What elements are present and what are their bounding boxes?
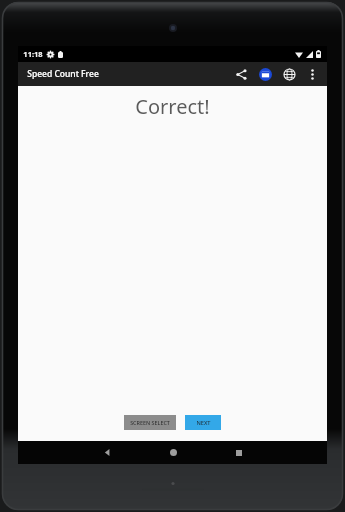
button[interactable]: Home bbox=[149, 441, 197, 464]
staticText: SCREEN SELECT bbox=[130, 419, 170, 426]
button[interactable]: NEXT bbox=[185, 415, 221, 430]
button[interactable]: More options bbox=[301, 63, 323, 85]
staticText: Speed Count Free bbox=[27, 68, 99, 80]
button[interactable]: Share bbox=[229, 62, 253, 86]
staticText: NEXT bbox=[196, 419, 211, 427]
button[interactable]: Recent apps bbox=[215, 441, 263, 464]
button[interactable]: Language bbox=[277, 62, 301, 86]
button[interactable]: SCREEN SELECT bbox=[124, 415, 176, 430]
staticText: Correct! bbox=[135, 93, 210, 120]
staticText: 11:18 bbox=[23, 49, 43, 59]
button[interactable]: Window mode bbox=[253, 62, 277, 86]
button[interactable]: Back bbox=[83, 441, 131, 464]
